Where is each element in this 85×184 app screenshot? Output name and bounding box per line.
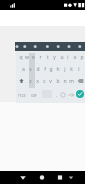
- button[interactable]: l: [75, 63, 82, 75]
- staticText: h: [56, 66, 60, 73]
- staticText: o: [73, 54, 77, 61]
- button[interactable]: k: [68, 63, 75, 75]
- staticText: x: [36, 78, 39, 85]
- staticText: n: [63, 78, 67, 85]
- button[interactable]: Home: [35, 171, 49, 184]
- staticText: f: [44, 66, 46, 73]
- staticText: j: [64, 66, 66, 73]
- staticText: d: [36, 66, 40, 73]
- button[interactable]: u: [58, 51, 65, 63]
- button[interactable]: Recents: [53, 171, 67, 184]
- staticText: i: [67, 54, 69, 61]
- button[interactable]: i: [64, 51, 71, 63]
- staticText: w: [25, 54, 29, 61]
- button[interactable]: a: [20, 63, 27, 75]
- button[interactable]: f: [41, 63, 48, 75]
- button[interactable]: Enter: [76, 90, 84, 98]
- staticText: k: [70, 66, 73, 73]
- staticText: l: [78, 66, 80, 73]
- button[interactable]: g: [47, 63, 54, 75]
- button[interactable]: j: [61, 63, 68, 75]
- button[interactable]: Next: [67, 87, 75, 103]
- staticText: c: [43, 78, 46, 85]
- staticText: ?123: [18, 93, 26, 98]
- button[interactable]: v: [47, 75, 54, 87]
- button[interactable]: t: [44, 51, 51, 63]
- button[interactable]: r: [37, 51, 44, 63]
- button[interactable]: n: [61, 75, 68, 87]
- button[interactable]: y: [51, 51, 58, 63]
- button[interactable]: Hide keyboard: [16, 171, 30, 184]
- staticText: a: [22, 66, 25, 73]
- staticText: u: [60, 54, 64, 61]
- staticText: r: [39, 54, 42, 61]
- button[interactable]: q: [17, 51, 24, 63]
- staticText: z: [29, 78, 32, 85]
- staticText: e: [32, 54, 35, 61]
- staticText: y: [53, 54, 56, 61]
- staticText: g: [49, 66, 53, 73]
- button[interactable]: Backspace: [75, 75, 85, 87]
- button[interactable]: Language: [28, 87, 39, 103]
- button[interactable]: ?123: [16, 87, 27, 103]
- button[interactable]: More: [65, 171, 77, 184]
- button[interactable]: h: [54, 63, 61, 75]
- button[interactable]: c: [41, 75, 48, 87]
- button[interactable]: .: [53, 87, 60, 103]
- staticText: GIF: [31, 93, 37, 98]
- button[interactable]: b: [54, 75, 61, 87]
- button[interactable]: Keyboard toolbar: [15, 42, 85, 51]
- button[interactable]: d: [34, 63, 41, 75]
- button[interactable]: o: [71, 51, 78, 63]
- staticText: q: [19, 54, 23, 61]
- staticText: b: [56, 78, 60, 85]
- staticText: m: [69, 78, 74, 85]
- staticText: .: [56, 92, 58, 99]
- button[interactable]: w: [23, 51, 30, 63]
- button[interactable]: m: [68, 75, 75, 87]
- button[interactable]: z: [27, 75, 34, 87]
- staticText: s: [29, 66, 32, 73]
- button[interactable]: Shift: [16, 75, 27, 87]
- button[interactable]: e: [30, 51, 37, 63]
- button[interactable]: s: [27, 63, 34, 75]
- staticText: t: [47, 54, 49, 61]
- button[interactable]: p: [78, 51, 85, 63]
- button[interactable]: Emoji: [59, 87, 67, 103]
- button[interactable]: x: [34, 75, 41, 87]
- staticText: v: [49, 78, 52, 85]
- staticText: p: [80, 54, 84, 61]
